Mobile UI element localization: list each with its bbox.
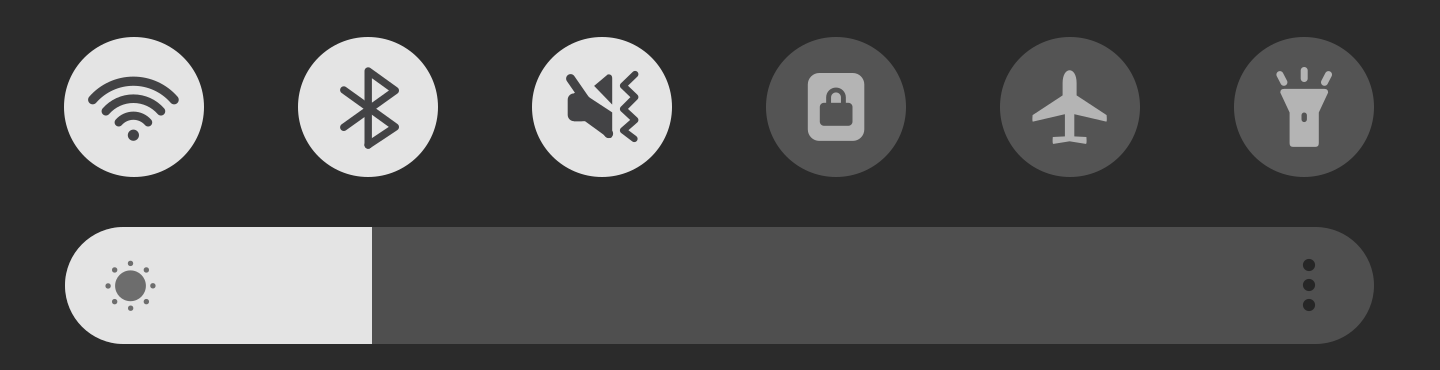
button[interactable]: Airplane Mode xyxy=(1000,37,1140,177)
button[interactable]: Wi-Fi xyxy=(64,37,204,177)
button[interactable]: Silent Mode xyxy=(532,37,672,177)
button[interactable]: Bluetooth xyxy=(298,37,438,177)
button[interactable]: Water Lock xyxy=(766,37,906,177)
button[interactable]: Flashlight xyxy=(1234,37,1374,177)
button[interactable]: Brightness xyxy=(65,227,1374,344)
